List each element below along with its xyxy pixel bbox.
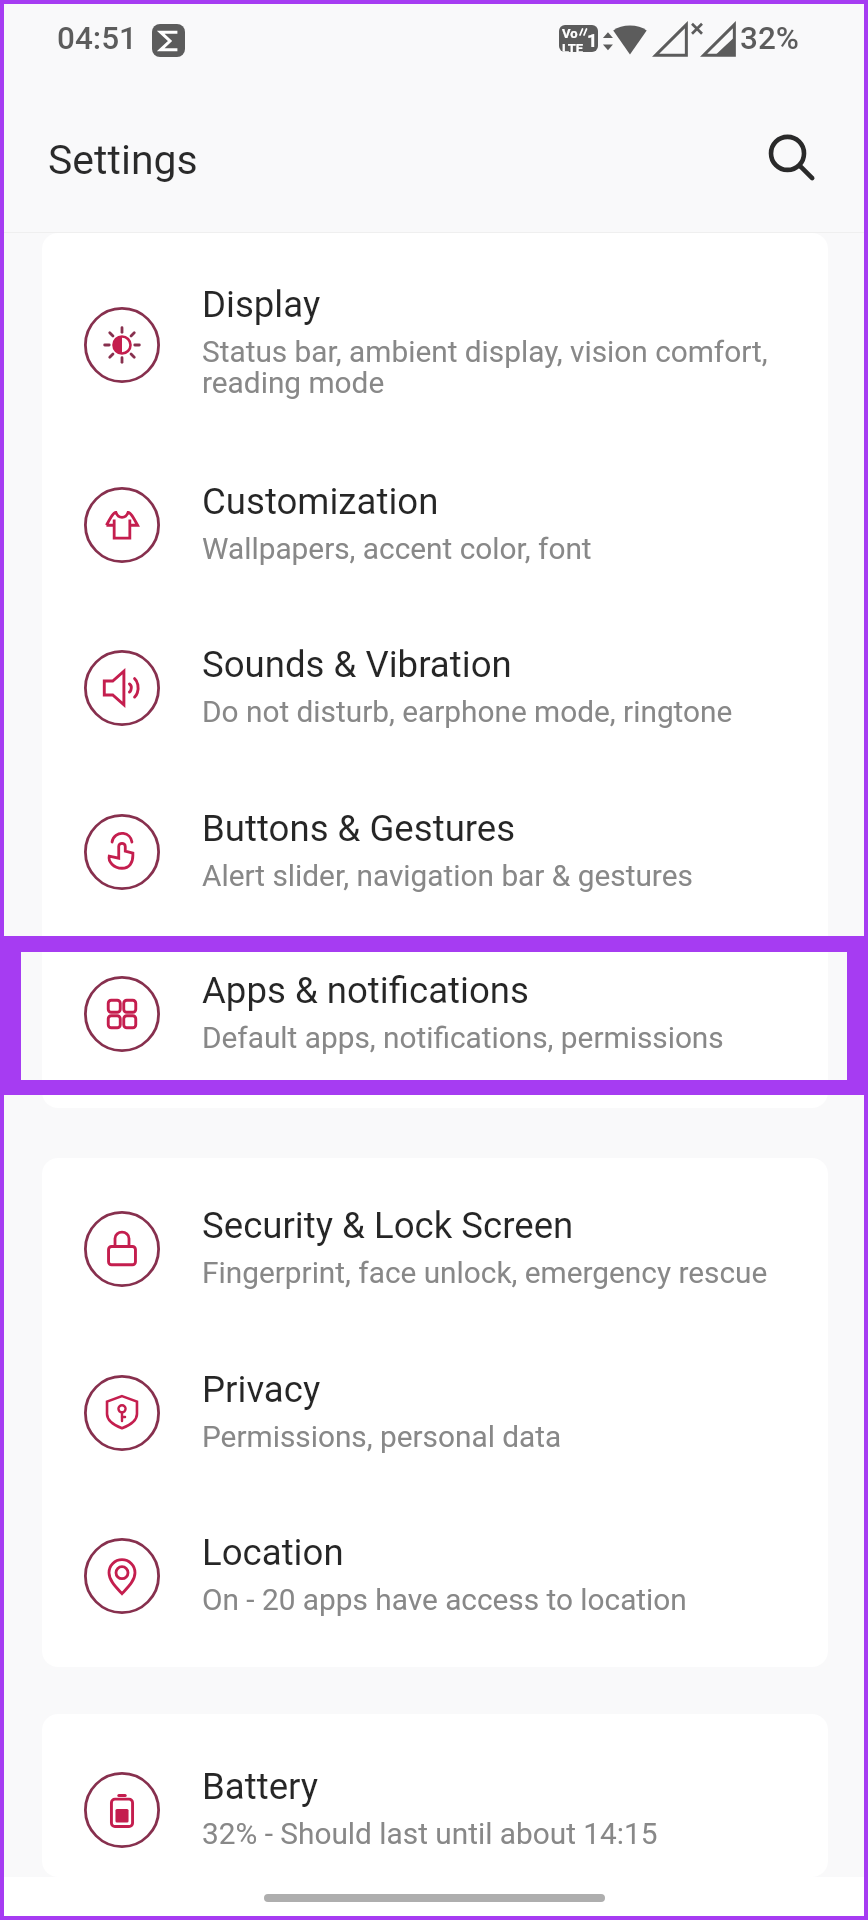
button[interactable]: Location — [42, 1495, 828, 1657]
staticText: 32% - Should last until about 14:15 — [202, 1816, 658, 1851]
button[interactable]: Display — [42, 264, 828, 426]
button[interactable]: Search — [758, 125, 826, 193]
staticText: Battery — [202, 1765, 319, 1808]
staticText: Settings — [48, 136, 198, 184]
staticText: 04:51 — [57, 20, 137, 57]
staticText: Security & Lock Screen — [202, 1204, 574, 1247]
button[interactable]: Privacy — [42, 1332, 828, 1494]
staticText: Permissions, personal data — [202, 1419, 562, 1454]
button[interactable]: Security & Lock Screen — [42, 1168, 828, 1330]
staticText: Buttons & Gestures — [202, 807, 516, 850]
staticText: Default apps, notifications, permissions — [202, 1020, 724, 1055]
staticText: On - 20 apps have access to location — [202, 1582, 687, 1617]
staticText: 1 — [587, 30, 598, 51]
staticText: 32% — [740, 20, 799, 57]
staticText: Fingerprint, face unlock, emergency resc… — [202, 1255, 768, 1290]
staticText: Customization — [202, 480, 439, 523]
staticText: Status bar, ambient display, vision comf… — [202, 334, 768, 401]
staticText: Sounds & Vibration — [202, 643, 512, 686]
staticText: Location — [202, 1531, 344, 1574]
staticText: Display — [202, 283, 321, 326]
staticText: LTE — [562, 41, 584, 52]
staticText: Alert slider, navigation bar & gestures — [202, 858, 693, 893]
button[interactable]: Battery — [42, 1729, 828, 1891]
button[interactable]: Customization — [42, 444, 828, 606]
staticText: Vo — [562, 26, 578, 41]
staticText: Wallpapers, accent color, font — [202, 531, 592, 566]
staticText: Privacy — [202, 1368, 321, 1411]
button[interactable]: Buttons & Gestures — [42, 771, 828, 933]
staticText: Apps & notifications — [202, 969, 529, 1012]
staticText: Do not disturb, earphone mode, ringtone — [202, 694, 733, 729]
button[interactable]: Apps & notifications — [42, 933, 828, 1095]
button[interactable]: Settings — [36, 128, 210, 192]
button[interactable]: Sounds & Vibration — [42, 607, 828, 769]
